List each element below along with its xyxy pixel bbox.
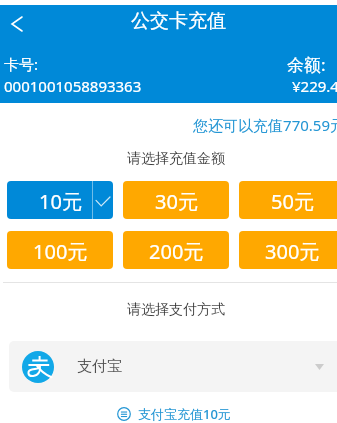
button[interactable]: 10元 xyxy=(7,181,113,219)
staticText: 请选择充值金额 xyxy=(0,150,337,168)
staticText: 100元 xyxy=(33,238,88,265)
staticText: 300元 xyxy=(265,238,320,265)
staticText: 您还可以充值770.59元 xyxy=(0,115,337,135)
staticText: ¥229.41 xyxy=(292,76,337,96)
other: Expand payment methods xyxy=(315,364,324,370)
staticText: 请选择支付方式 xyxy=(0,301,337,319)
staticText: 余额: xyxy=(287,53,326,76)
button[interactable]: 200元 xyxy=(123,231,229,269)
staticText: 0001001058893363 xyxy=(4,76,142,96)
button[interactable]: Back xyxy=(0,7,33,40)
staticText: 30元 xyxy=(155,188,198,215)
button[interactable]: 支付宝 xyxy=(9,341,337,392)
staticText: 200元 xyxy=(149,238,204,265)
button[interactable]: 支付宝充值10元 xyxy=(117,405,231,423)
staticText: 10元 xyxy=(7,188,82,215)
staticText: 支付宝充值10元 xyxy=(138,405,231,423)
button[interactable]: 300元 xyxy=(239,231,337,269)
staticText: 卡号: xyxy=(4,54,39,74)
button[interactable]: 50元 xyxy=(239,181,337,219)
staticText: 支付宝 xyxy=(77,357,122,376)
button[interactable]: 100元 xyxy=(7,231,113,269)
button[interactable]: 30元 xyxy=(123,181,229,219)
staticText: 公交卡充值 xyxy=(131,9,226,33)
staticText: 50元 xyxy=(271,188,314,215)
